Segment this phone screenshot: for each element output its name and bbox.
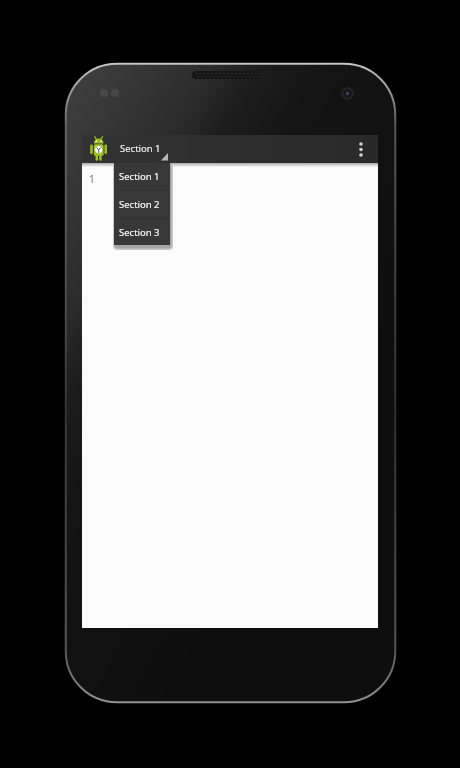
- staticText: Section 1: [119, 170, 160, 183]
- button[interactable]: Section 1: [112, 135, 172, 163]
- staticText: Section 2: [119, 198, 160, 211]
- button[interactable]: Section 3: [114, 219, 170, 245]
- button[interactable]: Section 2: [114, 191, 170, 218]
- staticText: 1: [89, 172, 95, 186]
- staticText: Section 3: [119, 226, 160, 239]
- button[interactable]: Section 1: [114, 163, 170, 190]
- staticText: Section 1: [120, 142, 161, 155]
- button[interactable]: [344, 135, 378, 163]
